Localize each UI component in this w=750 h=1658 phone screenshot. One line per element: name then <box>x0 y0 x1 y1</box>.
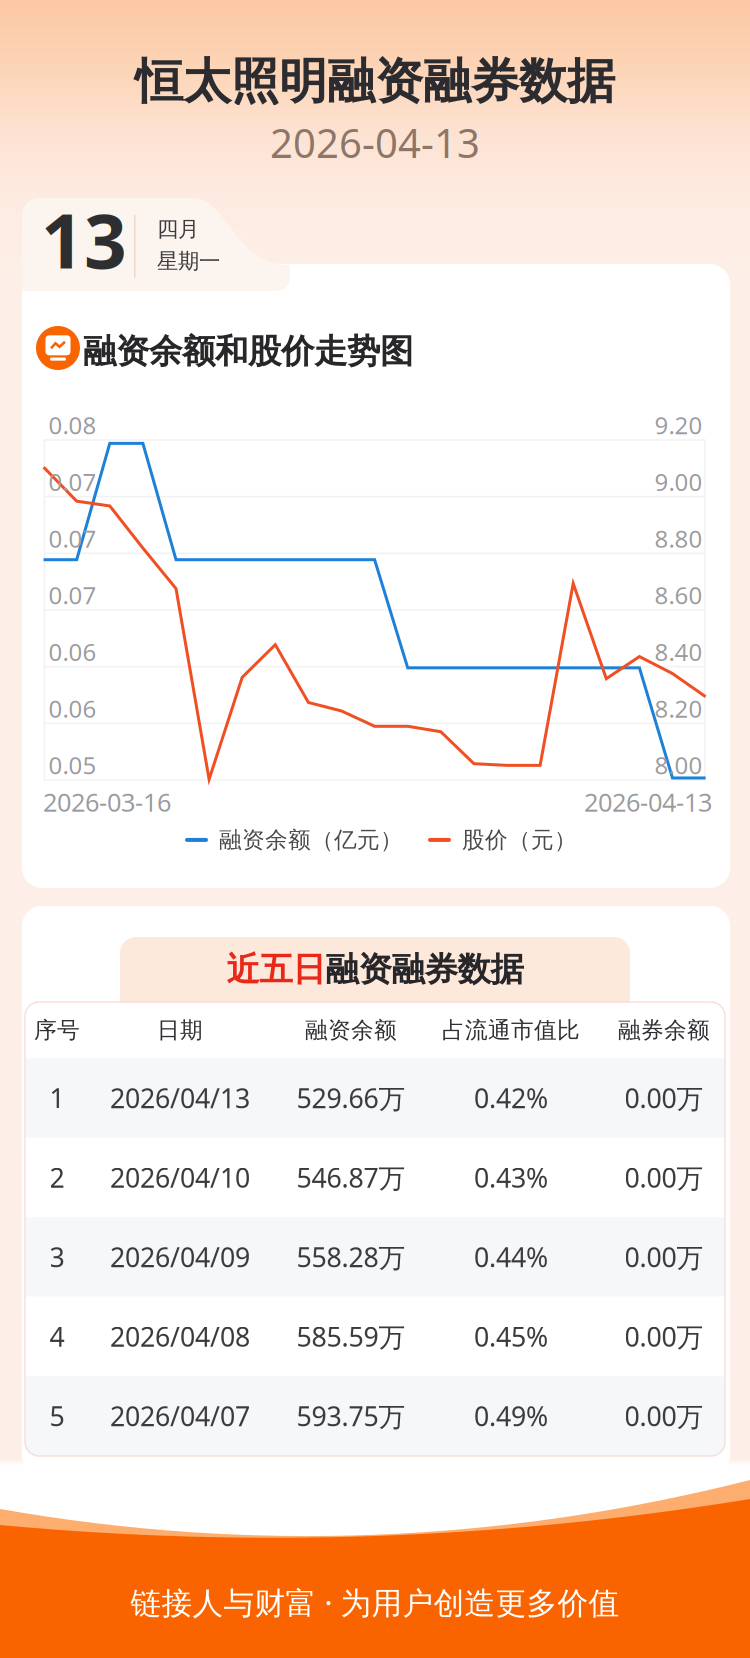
staticText: 0.05 <box>49 749 97 781</box>
staticText: 2 <box>49 1160 64 1195</box>
staticText: 星期一 <box>157 248 220 274</box>
staticText: 558.28万 <box>296 1239 405 1275</box>
staticText: 融资余额和股价走势图 <box>83 331 413 372</box>
staticText: 8.80 <box>655 522 703 554</box>
staticText: 0.00万 <box>624 1239 703 1275</box>
staticText: 2026-04-13 <box>584 785 712 819</box>
staticText: 股价（元） <box>462 826 577 854</box>
staticText: 0.08 <box>49 409 97 441</box>
staticText: 9.00 <box>655 466 703 498</box>
staticText: 序号 <box>34 1016 80 1044</box>
staticText: 0.43% <box>474 1160 548 1195</box>
staticText: 5 <box>49 1398 64 1434</box>
staticText: 4 <box>49 1319 64 1354</box>
staticText: 0.07 <box>49 579 97 611</box>
staticText: 链接人与财富 · 为用户创造更多价值 <box>130 1582 619 1623</box>
staticText: 3 <box>49 1239 64 1275</box>
staticText: 2026-04-13 <box>270 116 480 169</box>
staticText: 546.87万 <box>296 1160 405 1195</box>
staticText: 0.07 <box>49 522 97 554</box>
staticText: 近五日 <box>226 949 325 990</box>
staticText: 0.06 <box>49 692 97 724</box>
staticText: 融券余额 <box>618 1016 710 1044</box>
staticText: 融资融券数据 <box>325 949 523 990</box>
staticText: 四月 <box>157 216 199 242</box>
staticText: 1 <box>49 1080 64 1116</box>
staticText: 融资余额 <box>305 1016 397 1044</box>
staticText: 0.00万 <box>624 1160 703 1195</box>
staticText: 2026/04/08 <box>110 1319 250 1354</box>
staticText: 0.00万 <box>624 1398 703 1434</box>
staticText: 0.45% <box>474 1319 548 1354</box>
staticText: 融资余额（亿元） <box>219 826 403 854</box>
staticText: 2026/04/10 <box>110 1160 250 1195</box>
staticText: 恒太照明融资融券数据 <box>135 52 615 111</box>
staticText: 日期 <box>157 1016 203 1044</box>
staticText: 8.20 <box>655 692 703 724</box>
staticText: 0.42% <box>474 1080 548 1116</box>
staticText: 9.20 <box>655 409 703 441</box>
staticText: 0.06 <box>49 636 97 668</box>
staticText: 占流通市值比 <box>442 1016 580 1044</box>
staticText: 0.49% <box>474 1398 548 1434</box>
staticText: 8.00 <box>655 749 703 781</box>
staticText: 593.75万 <box>296 1398 405 1434</box>
staticText: 585.59万 <box>296 1319 405 1354</box>
staticText: 2026/04/09 <box>110 1239 250 1275</box>
staticText: 0.00万 <box>624 1319 703 1354</box>
staticText: 529.66万 <box>296 1080 405 1116</box>
staticText: 2026/04/13 <box>110 1080 250 1116</box>
staticText: 2026/04/07 <box>110 1398 250 1434</box>
staticText: 0.07 <box>49 466 97 498</box>
staticText: 13 <box>41 190 127 289</box>
staticText: 0.44% <box>474 1239 548 1275</box>
staticText: 8.40 <box>655 636 703 668</box>
staticText: 0.00万 <box>624 1080 703 1116</box>
staticText: 2026-03-16 <box>43 785 171 819</box>
staticText: 8.60 <box>655 579 703 611</box>
